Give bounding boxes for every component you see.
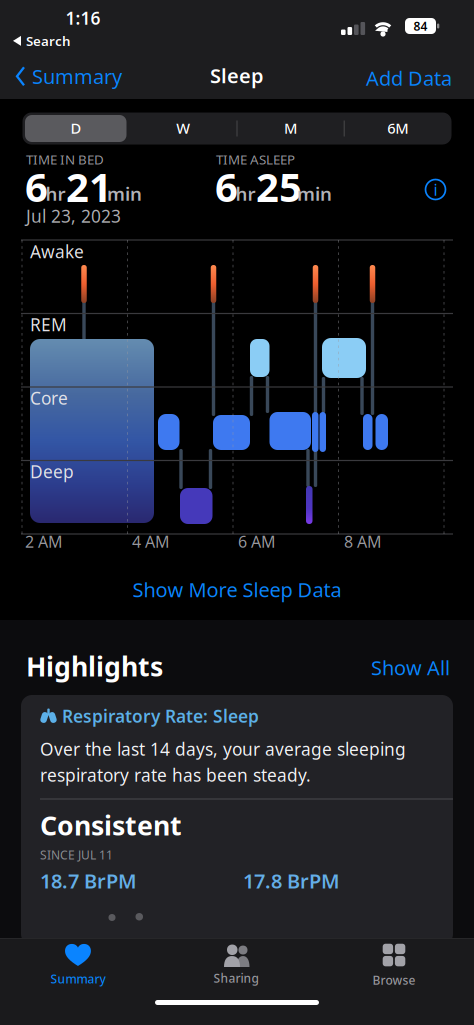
staticText: 6 [25,160,48,213]
staticText: M [284,118,297,138]
staticText: SINCE JUL 11 [40,847,113,863]
button[interactable]: Back to Summary [0,0,474,1025]
button[interactable]: Show More Sleep Data [0,0,474,1025]
button[interactable]: Show All [0,0,474,1025]
staticText: Show More Sleep Data [132,576,341,603]
button[interactable]: Respiratory Rate: Sleep [0,0,474,1025]
staticText: 1:16 [65,6,100,29]
staticText: 21 [66,160,112,213]
staticText: D [71,118,82,138]
staticText: TIME ASLEEP [216,150,295,168]
staticText: Jul 23, 2023 [26,204,121,227]
staticText: Search [26,32,71,50]
staticText: hr [235,181,255,206]
button[interactable]: About Sleep Data [0,0,474,1025]
staticText: 4 AM [132,531,170,552]
staticText: Awake [30,240,84,263]
button[interactable]: Back to Search [0,0,474,1025]
staticText: Summary [50,971,105,987]
button[interactable]: Add Data [0,0,474,1025]
button[interactable]: W [0,0,474,1025]
staticText: TIME IN BED [26,150,104,168]
staticText: min [107,181,142,206]
button[interactable]: M [0,0,474,1025]
button[interactable]: Browse [0,0,474,1025]
button[interactable]: 6M [0,0,474,1025]
staticText: 25 [256,160,302,213]
staticText: Core [30,386,68,409]
staticText: Show All [371,654,450,681]
button[interactable]: Summary [0,0,474,1025]
staticText: Over the last 14 days, your average slee… [40,737,406,786]
staticText: 6 AM [238,531,276,552]
staticText: Sharing [213,970,258,986]
staticText: Deep [30,460,74,483]
staticText: i [433,179,437,200]
staticText: Highlights [26,648,163,684]
staticText: Sleep [210,62,264,89]
staticText: Respiratory Rate: Sleep [62,704,259,727]
staticText: 2 AM [25,531,63,552]
staticText: REM [30,313,67,336]
staticText: 8 AM [344,531,382,552]
staticText: Add Data [366,65,452,91]
staticText: W [176,118,190,138]
staticText: 84 [413,18,427,34]
staticText: 18.7 BrPM [40,867,137,894]
button[interactable]: Sharing [0,0,474,1025]
staticText: min [297,181,332,206]
staticText: 6M [387,118,408,138]
staticText: 6 [215,160,238,213]
staticText: Consistent [40,807,182,843]
button[interactable]: D [0,0,474,1025]
staticText: 17.8 BrPM [243,867,340,894]
staticText: Summary [32,63,122,90]
staticText: Browse [372,972,415,988]
staticText: hr [45,181,65,206]
